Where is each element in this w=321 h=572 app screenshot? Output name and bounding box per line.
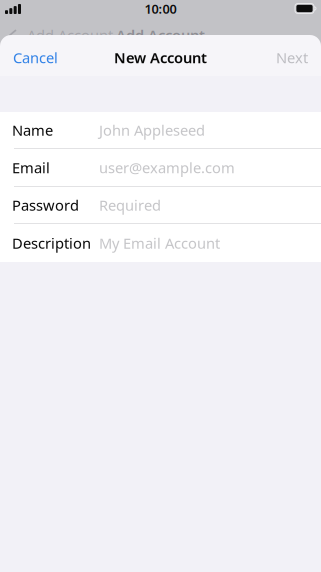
staticText: Add Account (116, 25, 205, 45)
staticText: Add Account (27, 25, 113, 45)
staticText: Cancel (13, 48, 58, 67)
staticText: user@example.com (99, 158, 235, 177)
staticText: 10:00 (144, 0, 176, 17)
staticText: Password (12, 195, 79, 215)
button[interactable]: Next (263, 39, 321, 75)
staticText: Email (12, 158, 50, 177)
staticText: New Account (114, 48, 207, 67)
staticText: Required (99, 195, 161, 215)
staticText: Next (276, 48, 308, 67)
staticText: Description (12, 233, 91, 253)
staticText: John Appleseed (99, 120, 205, 140)
staticText: My Email Account (99, 233, 220, 253)
staticText: Name (12, 120, 53, 140)
button[interactable]: Cancel (0, 39, 71, 75)
